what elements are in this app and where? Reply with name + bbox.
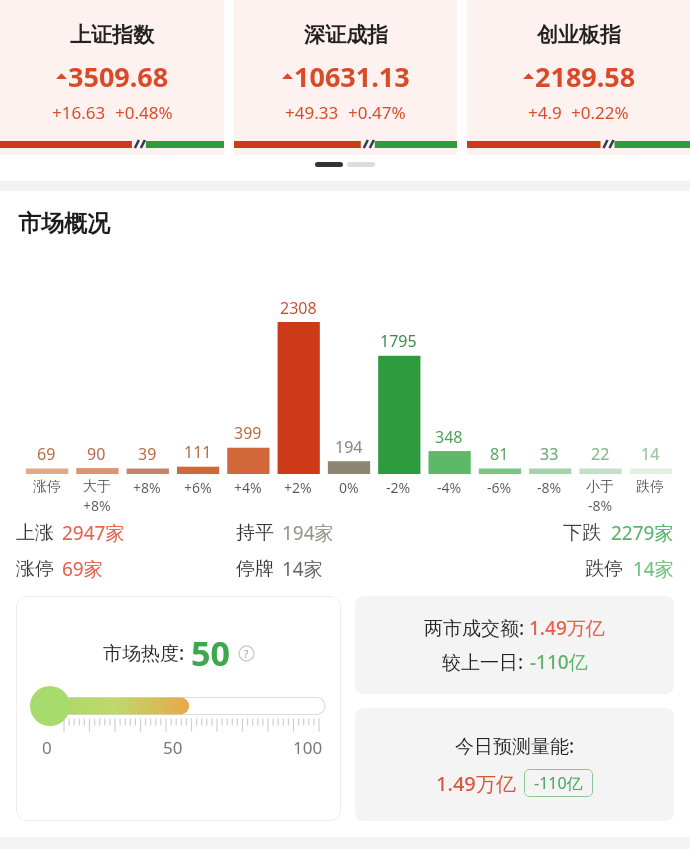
staticText: +4%: [234, 478, 262, 497]
staticText: 涨停: [33, 478, 61, 496]
button[interactable]: 说明: [238, 645, 255, 662]
staticText: 50: [163, 736, 183, 759]
staticText: +16.63: [52, 101, 106, 124]
staticText: 较上一日:: [442, 649, 524, 675]
staticText: 0%: [339, 478, 359, 497]
staticText: +0.22%: [571, 101, 629, 124]
staticText: -2%: [386, 478, 411, 497]
staticText: 22: [591, 443, 610, 465]
staticText: 194: [335, 436, 363, 458]
staticText: +8%: [83, 496, 111, 515]
staticText: 39: [138, 443, 157, 465]
staticText: -110亿: [530, 649, 588, 675]
staticText: 14家: [633, 556, 674, 582]
staticText: 涨停: [16, 557, 54, 581]
staticText: 今日预测量能:: [455, 733, 575, 759]
staticText: +0.47%: [348, 101, 406, 124]
staticText: 0: [42, 736, 52, 759]
staticText: 1.49万亿: [436, 770, 516, 797]
staticText: 81: [490, 443, 509, 465]
staticText: 下跌: [563, 521, 601, 545]
staticText: 创业板指: [537, 22, 621, 48]
staticText: 100: [293, 736, 323, 759]
staticText: 194家: [282, 520, 334, 546]
staticText: 69: [37, 443, 56, 465]
staticText: 两市成交额:: [424, 615, 525, 641]
staticText: 上涨: [16, 521, 54, 545]
staticText: +49.33: [285, 101, 339, 124]
staticText: 10631.13: [294, 58, 410, 95]
staticText: 348: [435, 426, 463, 448]
button[interactable]: 上证指数: [0, 0, 224, 155]
staticText: 深证成指: [304, 22, 388, 48]
staticText: 市场概况: [18, 209, 110, 238]
staticText: -4%: [437, 478, 462, 497]
button[interactable]: 市场热度:: [16, 596, 341, 821]
staticText: 2189.58: [535, 58, 636, 95]
staticText: -110亿: [534, 772, 583, 794]
staticText: -6%: [487, 478, 512, 497]
staticText: -8%: [537, 478, 562, 497]
staticText: 2279家: [611, 520, 674, 546]
button[interactable]: 今日预测量能:: [355, 708, 674, 821]
staticText: 399: [234, 422, 262, 444]
staticText: +4.9: [528, 101, 562, 124]
staticText: 持平: [236, 521, 274, 545]
staticText: 1.49万亿: [529, 615, 605, 641]
staticText: 69家: [62, 556, 103, 582]
staticText: ?: [244, 647, 249, 661]
staticText: 上证指数: [70, 22, 154, 48]
staticText: 停牌: [236, 557, 274, 581]
staticText: 1795: [380, 330, 417, 352]
staticText: 111: [184, 441, 212, 463]
staticText: 跌停: [636, 478, 664, 496]
staticText: 14: [641, 443, 660, 465]
staticText: -8%: [588, 496, 613, 515]
button[interactable]: 两市成交额:: [355, 596, 674, 694]
staticText: 大于: [83, 478, 111, 496]
button[interactable]: 深证成指: [234, 0, 457, 155]
staticText: 3509.68: [68, 58, 169, 95]
staticText: 90: [87, 443, 106, 465]
button[interactable]: 创业板指: [467, 0, 690, 155]
staticText: +8%: [133, 478, 161, 497]
staticText: 2308: [280, 297, 317, 319]
staticText: +0.48%: [115, 101, 173, 124]
staticText: +6%: [184, 478, 212, 497]
staticText: 14家: [282, 556, 323, 582]
staticText: 33: [540, 443, 559, 465]
staticText: 跌停: [585, 557, 623, 581]
staticText: 2947家: [62, 520, 125, 546]
staticText: 市场热度:: [103, 640, 185, 666]
staticText: 小于: [586, 478, 614, 496]
staticText: 50: [191, 630, 230, 676]
staticText: +2%: [284, 478, 312, 497]
